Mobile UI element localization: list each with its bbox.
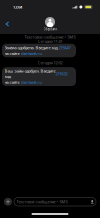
button[interactable]: Record audio <box>90 199 94 204</box>
button[interactable]: Back <box>1 17 13 31</box>
staticText: СберБанк <box>43 27 56 31</box>
staticText: 13:04 <box>13 4 22 10</box>
staticText: Текстовое сообщение • SMS <box>16 199 67 204</box>
staticText: Текстовое сообщение • SMS <box>24 34 75 39</box>
staticText: sberbank.ru <box>20 51 41 56</box>
staticText: Ваш займ одобрен. Введите код <box>4 68 55 79</box>
staticText: на сайте <box>4 51 20 56</box>
staticText: 215632 <box>55 71 67 76</box>
staticText: Сегодня 12:02 <box>37 60 62 65</box>
staticText: Сегодня 11:41 <box>37 39 62 44</box>
staticText: на сайте <box>4 79 20 85</box>
staticText: Заявка одобрена. Введите код <box>4 45 58 50</box>
staticText: 215647 <box>58 45 70 50</box>
button[interactable]: Add attachment <box>4 198 12 206</box>
button[interactable]: СберБанк <box>43 17 56 31</box>
staticText: sberbank.ru <box>20 79 41 85</box>
